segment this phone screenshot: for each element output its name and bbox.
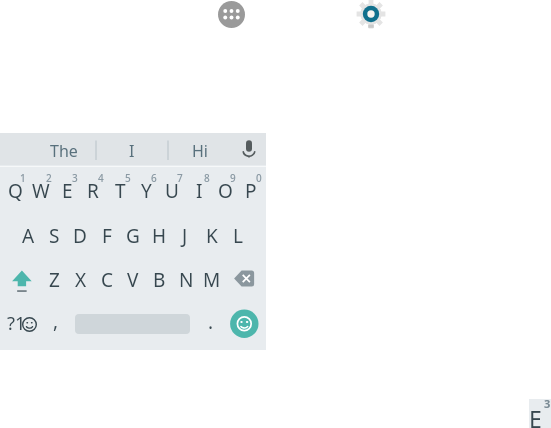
staticText: Q xyxy=(8,178,23,204)
button[interactable]: W xyxy=(28,168,54,213)
staticText: I xyxy=(196,178,203,204)
button[interactable]: Settings xyxy=(355,0,387,30)
button[interactable]: B xyxy=(146,257,172,302)
staticText: Z xyxy=(49,267,60,293)
staticText: 8 xyxy=(204,171,210,185)
button[interactable]: I xyxy=(98,135,166,167)
staticText: 2 xyxy=(46,171,52,185)
staticText: 9 xyxy=(230,171,236,185)
button[interactable]: Hi xyxy=(166,135,234,167)
staticText: V xyxy=(127,267,139,293)
button[interactable]: R xyxy=(80,168,106,213)
button[interactable]: L xyxy=(225,213,251,258)
button[interactable]: Symbols xyxy=(0,301,42,346)
button[interactable]: K xyxy=(199,213,225,258)
staticText: Hi xyxy=(192,140,208,162)
staticText: U xyxy=(165,178,179,204)
staticText: Y xyxy=(141,178,152,204)
button[interactable]: F xyxy=(94,213,120,258)
staticText: B xyxy=(153,267,166,293)
staticText: 5 xyxy=(125,171,131,185)
button[interactable]: Emoji xyxy=(223,301,266,346)
button[interactable]: Voice input xyxy=(233,133,265,165)
staticText: D xyxy=(73,223,87,249)
button[interactable]: J xyxy=(172,213,198,258)
button[interactable]: Y xyxy=(133,168,159,213)
button[interactable]: G xyxy=(120,213,146,258)
staticText: E xyxy=(529,403,542,428)
button[interactable]: The xyxy=(30,135,98,167)
staticText: I xyxy=(129,140,135,162)
button[interactable]: , xyxy=(42,301,70,346)
button[interactable]: U xyxy=(159,168,185,213)
staticText: R xyxy=(87,178,99,204)
button[interactable]: E xyxy=(54,168,80,213)
button[interactable]: A xyxy=(15,213,41,258)
staticText: J xyxy=(182,223,188,249)
button[interactable]: Q xyxy=(2,168,28,213)
staticText: . xyxy=(208,309,214,335)
staticText: 3 xyxy=(544,396,551,411)
staticText: 3 xyxy=(72,171,78,185)
staticText: T xyxy=(115,178,126,204)
button[interactable]: . xyxy=(195,301,223,346)
button[interactable]: D xyxy=(67,213,93,258)
staticText: , xyxy=(53,308,59,334)
button[interactable]: S xyxy=(41,213,67,258)
staticText: H xyxy=(152,223,167,249)
staticText: 4 xyxy=(98,171,104,185)
button[interactable]: H xyxy=(146,213,172,258)
staticText: The xyxy=(50,140,78,162)
staticText: X xyxy=(75,267,87,293)
button[interactable]: Z xyxy=(41,257,67,302)
button[interactable]: N xyxy=(173,257,199,302)
staticText: K xyxy=(206,223,218,249)
staticText: ?1 xyxy=(7,310,26,335)
staticText: F xyxy=(102,223,112,249)
staticText: 0 xyxy=(256,171,262,185)
button[interactable]: Space xyxy=(70,301,195,346)
staticText: S xyxy=(49,223,60,249)
staticText: O xyxy=(218,178,233,204)
button[interactable]: Shift xyxy=(2,257,42,302)
staticText: P xyxy=(245,178,257,204)
staticText: M xyxy=(203,267,221,293)
staticText: 7 xyxy=(177,171,183,185)
button[interactable]: P xyxy=(238,168,264,213)
staticText: E xyxy=(62,178,73,204)
button[interactable]: C xyxy=(94,257,120,302)
staticText: W xyxy=(32,178,50,204)
staticText: N xyxy=(179,267,194,293)
staticText: 6 xyxy=(151,171,157,185)
button[interactable]: T xyxy=(107,168,133,213)
button[interactable]: Backspace xyxy=(225,257,264,302)
button[interactable]: V xyxy=(120,257,146,302)
button[interactable]: O xyxy=(212,168,238,213)
staticText: A xyxy=(22,223,35,249)
button[interactable]: M xyxy=(199,257,225,302)
staticText: 1 xyxy=(20,171,26,185)
button[interactable]: I xyxy=(186,168,212,213)
button[interactable]: Apps xyxy=(218,1,245,28)
button[interactable]: X xyxy=(68,257,94,302)
staticText: G xyxy=(126,223,140,249)
staticText: C xyxy=(101,267,114,293)
staticText: L xyxy=(233,223,243,249)
